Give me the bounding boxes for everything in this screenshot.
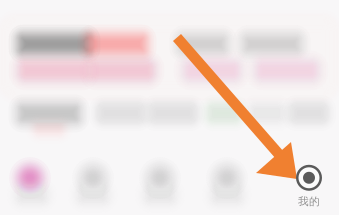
staticText: 我的 — [298, 195, 320, 208]
button[interactable]: 我的 — [283, 162, 335, 210]
